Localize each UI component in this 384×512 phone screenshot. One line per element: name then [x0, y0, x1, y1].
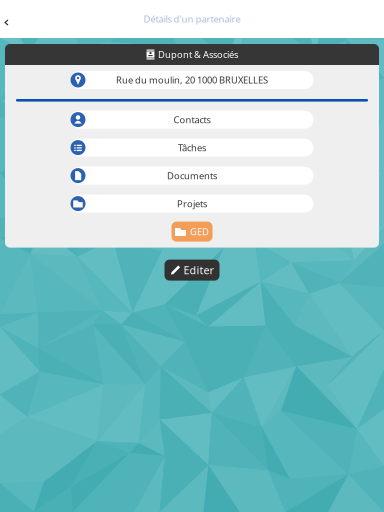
button[interactable]: Tâches [70, 139, 313, 157]
button[interactable]: Editer [164, 260, 219, 281]
staticText: Editer [183, 263, 213, 277]
staticText: Dupont & Associés [158, 48, 238, 61]
staticText: Documents [167, 169, 217, 182]
button[interactable]: Back [0, 4, 17, 34]
staticText: GED [190, 225, 209, 238]
button[interactable]: Projets [70, 195, 313, 213]
button[interactable]: Documents [70, 167, 313, 185]
staticText: Détails d'un partenaire [143, 13, 240, 25]
staticText: Rue du moulin, 20 1000 BRUXELLES [116, 74, 268, 86]
button[interactable]: GED [171, 222, 212, 242]
staticText: Projets [177, 197, 207, 210]
staticText: Tâches [178, 141, 206, 154]
button[interactable]: Contacts [70, 111, 313, 129]
button[interactable]: Rue du moulin, 20 1000 BRUXELLES [70, 71, 313, 89]
staticText: Contacts [173, 113, 210, 126]
